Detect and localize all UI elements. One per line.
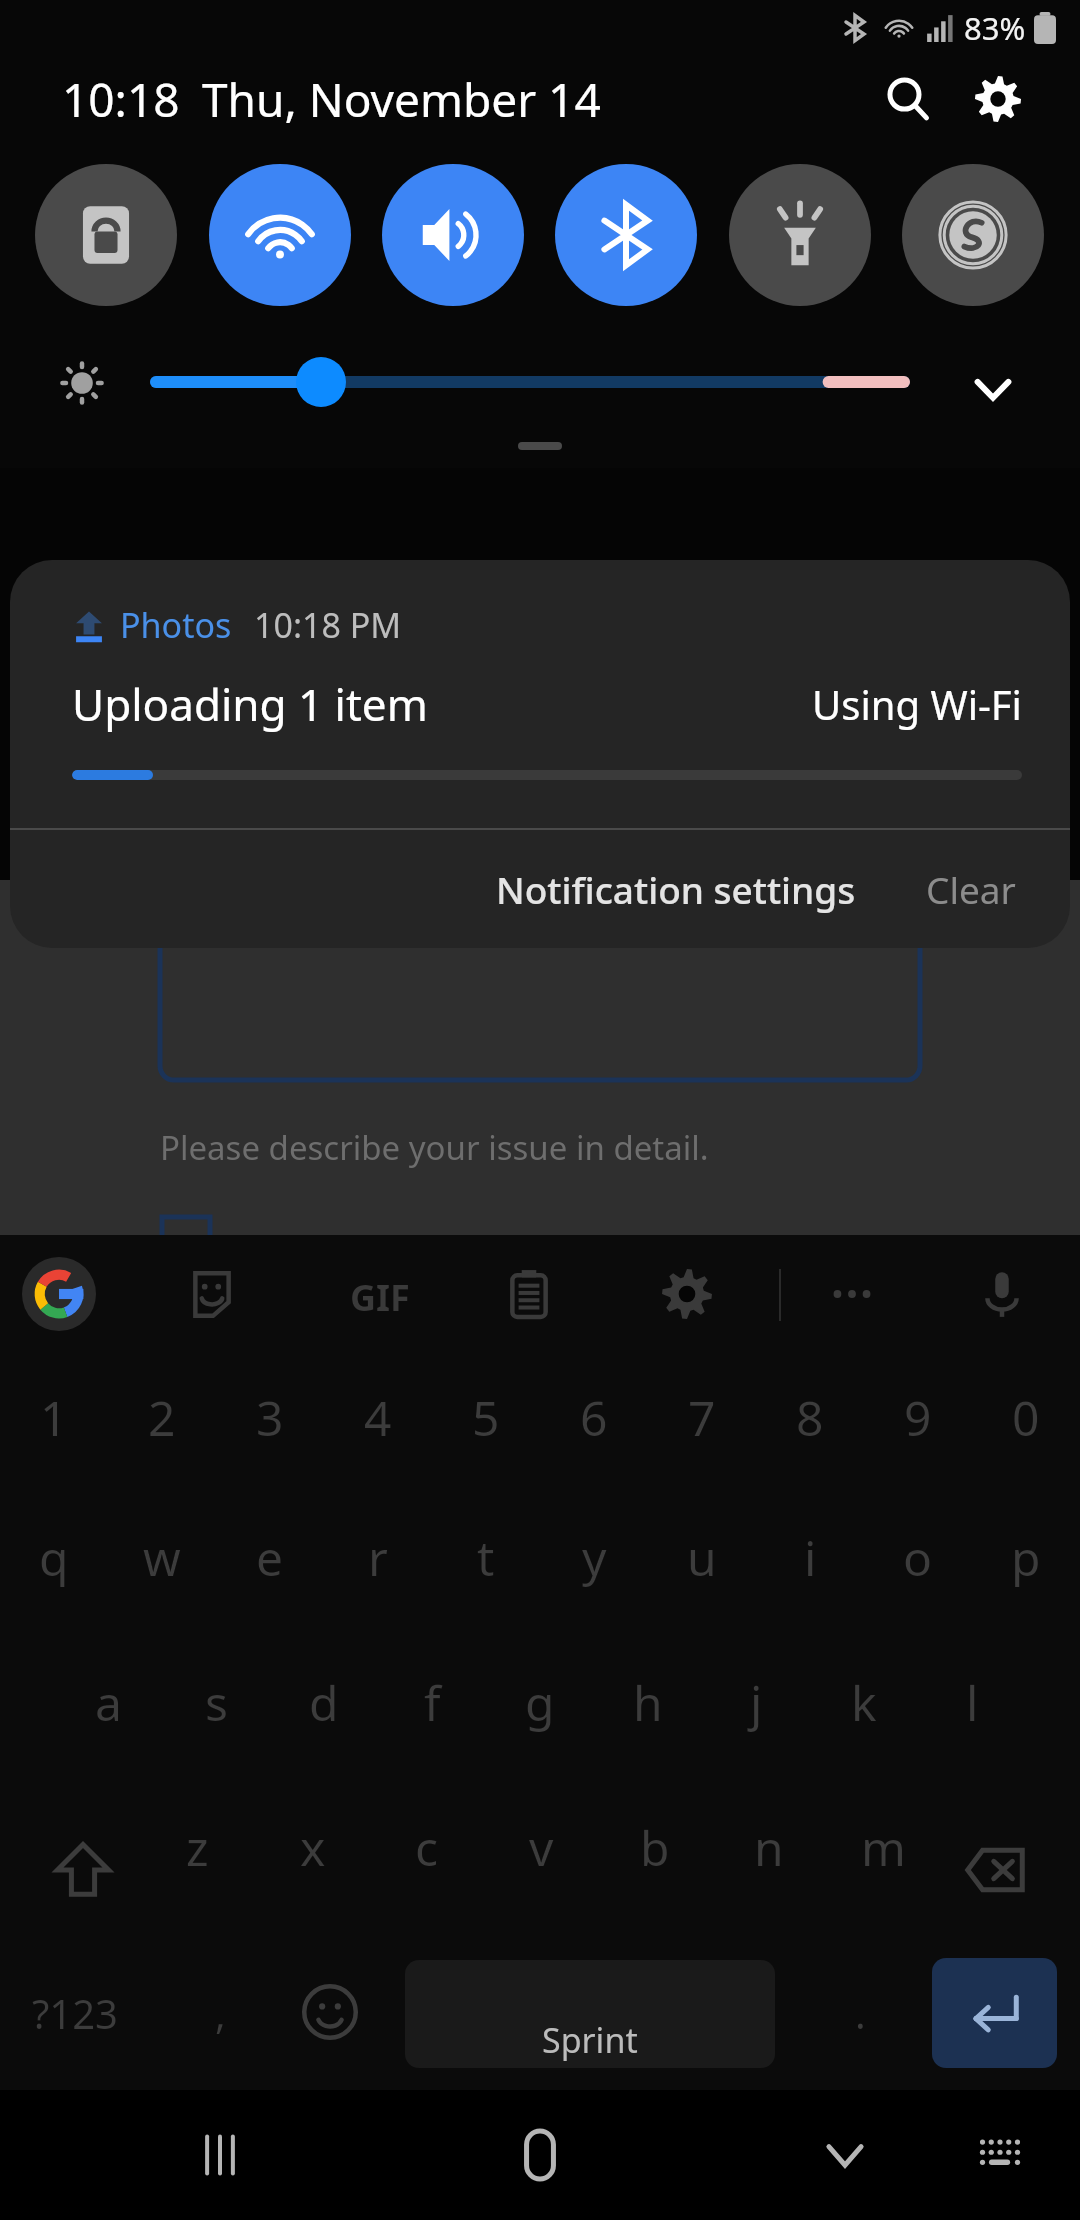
button[interactable]: Settings [958,59,1038,139]
staticText: 1 [40,1385,68,1450]
button[interactable]: Back [805,2115,885,2195]
button[interactable]: Search [868,59,948,139]
button[interactable]: j [702,1670,810,1815]
button[interactable]: Emoji [280,1962,380,2062]
staticText: e [256,1525,284,1590]
button[interactable]: g [486,1670,594,1815]
staticText: a [95,1670,122,1735]
button[interactable]: e [216,1525,324,1670]
staticText: 9 [904,1385,932,1450]
staticText: p [1011,1525,1041,1590]
button[interactable]: Flashlight [729,164,871,306]
staticText: 83% [964,7,1026,49]
button[interactable]: Notification settings [480,830,872,948]
staticText: 8 [796,1385,824,1450]
button[interactable]: ?123 [10,1960,140,2065]
button[interactable]: Home [500,2115,580,2195]
staticText: 7 [688,1385,716,1450]
button[interactable]: f [378,1670,486,1815]
staticText: u [687,1525,717,1590]
button[interactable]: Google [22,1257,96,1331]
button[interactable]: y [540,1525,648,1670]
button[interactable]: v [484,1815,598,1925]
staticText: GIF [350,1273,410,1322]
button[interactable]: Voice input [965,1257,1039,1331]
button[interactable]: t [432,1525,540,1670]
button[interactable]: Expand quick settings [955,354,1031,424]
button[interactable]: d [270,1670,378,1815]
staticText: Using Wi-Fi [812,677,1022,731]
button[interactable]: Keyboard settings [650,1257,724,1331]
button[interactable]: More options [815,1257,889,1331]
staticText: r [368,1525,388,1590]
staticText: t [477,1525,495,1590]
button[interactable]: h [594,1670,702,1815]
staticText: 10:18 PM [254,602,402,648]
button[interactable]: c [370,1815,484,1925]
button[interactable]: b [598,1815,712,1925]
button[interactable]: s [162,1670,270,1815]
staticText: c [415,1815,439,1880]
staticText: Clear [926,864,1016,914]
button[interactable]: Hide keyboard [960,2115,1040,2195]
staticText: Thu, November 14 [202,68,601,131]
button[interactable]: 4 [324,1385,432,1530]
button[interactable]: 3 [216,1385,324,1530]
button[interactable]: GIF [330,1257,404,1331]
staticText: 4 [364,1385,392,1450]
staticText: z [186,1815,209,1880]
button[interactable]: l [918,1670,1026,1815]
button[interactable]: 9 [864,1385,972,1530]
button[interactable]: Stickers [175,1257,249,1331]
button[interactable]: Clipboard [492,1257,566,1331]
button[interactable]: n [712,1815,826,1925]
staticText: i [804,1525,817,1590]
button[interactable]: Shift [28,1815,138,1925]
button[interactable]: w [108,1525,216,1670]
staticText: 5 [472,1385,500,1450]
button[interactable]: Sound [382,164,524,306]
button[interactable]: r [324,1525,432,1670]
button[interactable]: Backspace [940,1815,1050,1925]
button[interactable]: u [648,1525,756,1670]
button[interactable]: Sprint [405,1960,775,2068]
staticText: 10:18 [62,68,180,131]
button[interactable]: 1 [0,1385,108,1530]
button[interactable]: Recents [180,2115,260,2195]
button[interactable]: k [810,1670,918,1815]
staticText: b [640,1815,670,1880]
button[interactable]: a [54,1670,162,1815]
staticText: s [205,1670,228,1735]
button[interactable]: 2 [108,1385,216,1530]
staticText: l [966,1670,979,1735]
button[interactable]: Bluetooth [555,164,697,306]
staticText: n [754,1815,784,1880]
button[interactable]: Wi-Fi [209,164,351,306]
staticText: q [39,1525,69,1590]
button[interactable]: q [0,1525,108,1670]
button[interactable]: Enter [932,1958,1057,2068]
button[interactable]: 0 [972,1385,1080,1530]
button[interactable]: z [140,1815,255,1925]
button[interactable]: 7 [648,1385,756,1530]
button[interactable]: m [826,1815,940,1925]
staticText: o [903,1525,933,1590]
button[interactable]: Photos [10,560,1070,948]
button[interactable]: x [255,1815,370,1925]
staticText: d [309,1670,339,1735]
button[interactable]: i [756,1525,864,1670]
button[interactable]: 5 [432,1385,540,1530]
staticText: Sprint [542,2017,638,2063]
button[interactable]: 6 [540,1385,648,1530]
button[interactable]: o [864,1525,972,1670]
button[interactable]: Shazam [902,164,1044,306]
button[interactable]: 8 [756,1385,864,1530]
staticText: f [424,1670,441,1735]
button[interactable]: p [972,1525,1080,1670]
button[interactable]: Clear [916,830,1070,948]
button[interactable]: Screen lock [35,164,177,306]
staticText: Please describe your issue in detail. [160,1125,709,1170]
staticText: 3 [256,1385,284,1450]
